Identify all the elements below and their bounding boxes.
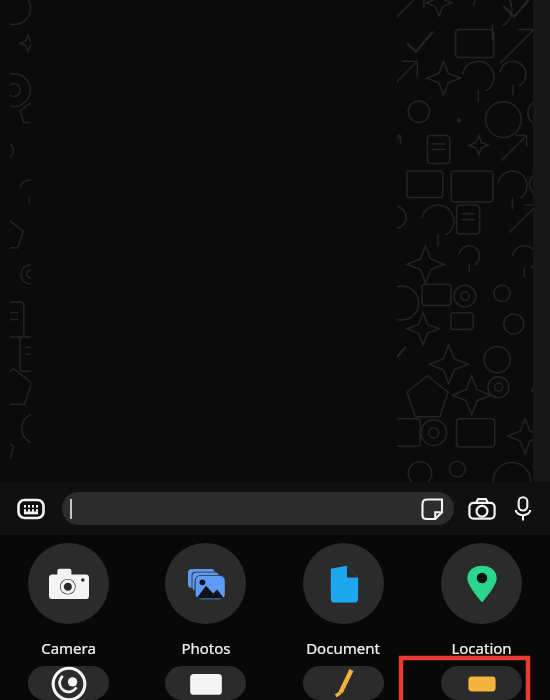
- staticText: Document: [306, 638, 380, 658]
- button[interactable]: Poll: [274, 666, 412, 700]
- button[interactable]: Stickers: [419, 496, 445, 522]
- button[interactable]: Keyboard: [14, 492, 48, 526]
- button[interactable]: Stickers: [62, 492, 454, 525]
- button[interactable]: Document: [274, 543, 412, 658]
- staticText: Camera: [41, 638, 96, 658]
- staticText: Photos: [181, 638, 231, 658]
- button[interactable]: Photos: [137, 543, 274, 658]
- button[interactable]: Camera: [0, 543, 137, 658]
- button[interactable]: Contact: [137, 666, 274, 700]
- button[interactable]: Voice message: [507, 493, 538, 524]
- button[interactable]: Location: [412, 543, 550, 658]
- button[interactable]: Camera: [465, 492, 498, 525]
- staticText: Location: [451, 638, 512, 658]
- button[interactable]: Audio: [0, 666, 137, 700]
- button[interactable]: Event: [412, 666, 550, 700]
